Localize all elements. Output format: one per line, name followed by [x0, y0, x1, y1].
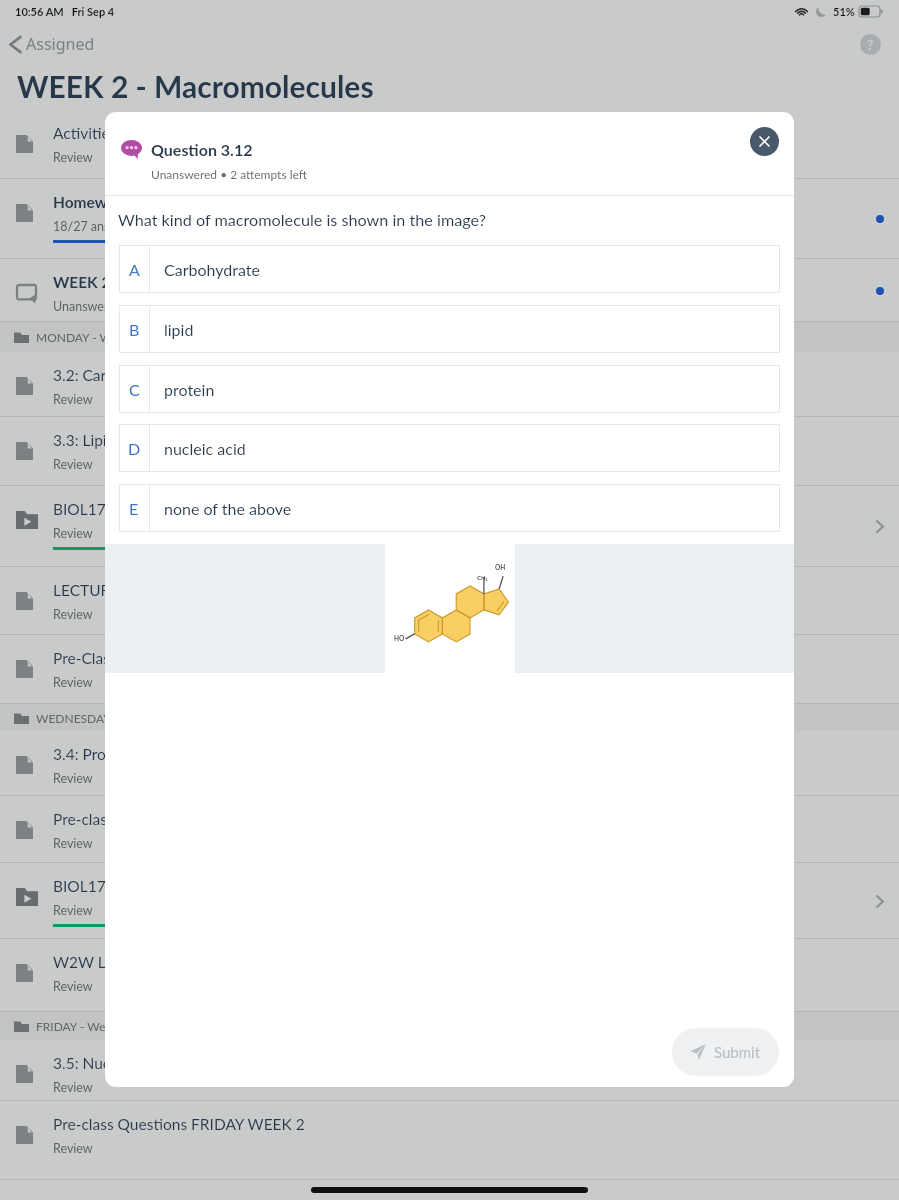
staticText: D — [128, 439, 141, 458]
button[interactable]: WEDNESDAY - Week 2 — [0, 704, 899, 731]
staticText: ? — [867, 36, 874, 53]
staticText: Review — [53, 836, 93, 851]
staticText: OH — [495, 564, 506, 572]
button[interactable]: B — [119, 305, 780, 353]
staticText: W2W Lecture Questions — [53, 953, 223, 972]
staticText: Review — [53, 526, 93, 541]
staticText: B — [129, 320, 140, 339]
staticText: What kind of macromolecule is shown in t… — [118, 210, 486, 229]
staticText: Unanswered • 2 attempts left — [151, 167, 307, 181]
staticText: WEEK 2 Discussion — [53, 273, 189, 292]
staticText: Review — [53, 607, 93, 622]
button[interactable]: Help — [860, 34, 881, 55]
button[interactable]: Submit — [672, 1028, 779, 1076]
staticText: C — [129, 380, 140, 399]
staticText: none of the above — [164, 499, 292, 518]
staticText: Review — [53, 1080, 93, 1095]
button[interactable]: WEEK 2 Discussion — [0, 259, 899, 322]
button[interactable]: W2W Lecture Questions — [0, 939, 899, 1012]
staticText: BIOL171 - Proteins Video — [53, 877, 228, 896]
button[interactable]: BIOL171 - Lipids Video — [0, 486, 899, 567]
button[interactable]: 3.3: Lipids — [0, 417, 899, 486]
staticText: Review — [53, 457, 93, 472]
staticText: Assigned — [26, 33, 95, 55]
button[interactable]: Close — [750, 127, 779, 156]
staticText: lipid — [164, 320, 194, 339]
staticText: 18/27 answered — [53, 219, 144, 234]
staticText: WEEK 2 - Macromolecules — [17, 68, 374, 104]
staticText: MONDAY - Week 2 — [36, 330, 141, 344]
staticText: Submit — [714, 1043, 761, 1061]
button[interactable]: Pre-class Questions FRIDAY WEEK 2 — [0, 1101, 899, 1180]
staticText: Carbohydrate — [164, 260, 260, 279]
staticText: A — [129, 260, 140, 279]
staticText: Pre-Class Questions MONDAY — [53, 649, 264, 668]
staticText: WEDNESDAY - Week 2 — [36, 711, 162, 725]
staticText: FRIDAY - Week 2 — [36, 1019, 128, 1033]
staticText: Review — [53, 675, 93, 690]
staticText: Review — [53, 771, 93, 786]
staticText: 51% — [833, 5, 855, 18]
button[interactable]: MONDAY - Week 2 — [0, 322, 899, 352]
button[interactable]: Activities - Macromolecules — [0, 110, 899, 179]
staticText: CH₃ — [477, 574, 488, 581]
staticText: Question 3.12 — [151, 140, 253, 159]
button[interactable]: E — [119, 484, 780, 532]
staticText: 10:56 AM Fri Sep 4 — [15, 5, 115, 18]
staticText: Homework 3 - Macromolecules — [53, 193, 270, 212]
staticText: Unanswered — [53, 299, 122, 314]
staticText: protein — [164, 380, 215, 399]
staticText: Review — [53, 979, 93, 994]
staticText: 3.5: Nucleic Acids — [53, 1054, 174, 1073]
button[interactable]: Pre-Class Questions MONDAY — [0, 635, 899, 704]
button[interactable]: A — [119, 245, 780, 293]
staticText: Review — [53, 392, 93, 407]
button[interactable]: D — [119, 424, 780, 472]
staticText: 3.4: Proteins — [53, 745, 139, 764]
button[interactable]: 3.2: Carbohydrates — [0, 352, 899, 417]
button[interactable]: 3.4: Proteins — [0, 731, 899, 796]
button[interactable]: BIOL171 - Proteins Video — [0, 863, 899, 939]
button[interactable]: 3.5: Nucleic Acids — [0, 1040, 899, 1101]
button[interactable]: Homework 3 - Macromolecules — [0, 179, 899, 259]
button[interactable]: C — [119, 365, 780, 413]
staticText: 3.2: Carbohydrates — [53, 366, 183, 385]
staticText: Pre-class Questions FRIDAY WEEK 2 — [53, 1115, 305, 1134]
staticText: nucleic acid — [164, 439, 246, 458]
staticText: BIOL171 - Lipids Video — [53, 500, 212, 519]
button[interactable]: FRIDAY - Week 2 — [0, 1012, 899, 1040]
button[interactable]: LECTURE Questions MONDAY — [0, 567, 899, 635]
staticText: Review — [53, 150, 93, 165]
staticText: HO — [394, 635, 405, 643]
staticText: 3.3: Lipids — [53, 431, 122, 450]
staticText: Review — [53, 903, 93, 918]
button[interactable]: Pre-class Questions WEDNESDAY — [0, 796, 899, 863]
staticText: Review — [53, 1141, 93, 1156]
staticText: Activities - Macromolecules — [53, 124, 242, 143]
staticText: LECTURE Questions MONDAY — [53, 581, 266, 600]
staticText: E — [129, 499, 139, 518]
staticText: Pre-class Questions WEDNESDAY — [53, 810, 288, 829]
button[interactable]: Assigned — [0, 29, 107, 59]
